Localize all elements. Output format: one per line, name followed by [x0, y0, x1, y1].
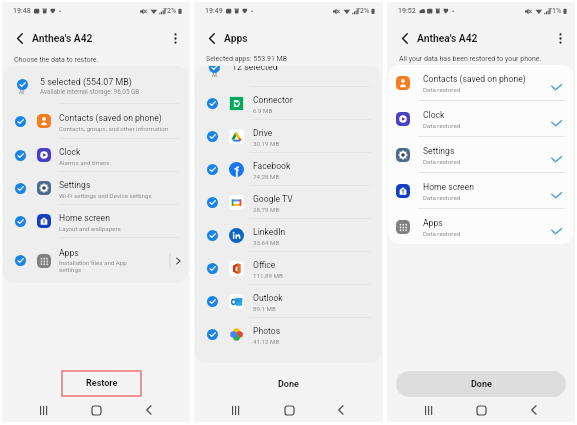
- staticText: Outlook: [253, 293, 283, 303]
- button[interactable]: Clock: [388, 101, 573, 136]
- button[interactable]: Apps: [388, 209, 573, 244]
- button[interactable]: Home screen: [3, 205, 188, 237]
- staticText: 19:52: [398, 7, 416, 15]
- button[interactable]: Contacts (saved on phone): [388, 65, 573, 100]
- staticText: Data restored: [423, 122, 461, 129]
- button[interactable]: Navigate up: [10, 28, 30, 48]
- staticText: 12 selected: [232, 66, 278, 72]
- staticText: Apps: [423, 218, 443, 228]
- button[interactable]: LinkedIn: [195, 219, 381, 251]
- button[interactable]: Home: [278, 399, 300, 421]
- staticText: 19:48: [13, 7, 31, 15]
- button[interactable]: Done: [194, 371, 383, 397]
- button[interactable]: Recents: [33, 399, 55, 421]
- staticText: Connector: [253, 95, 293, 105]
- staticText: Alarms and timers: [59, 159, 110, 166]
- staticText: 111.89 MB: [253, 272, 283, 279]
- button[interactable]: Settings: [388, 137, 573, 172]
- staticText: Facebook: [253, 161, 291, 171]
- button[interactable]: Navigate up: [395, 28, 415, 48]
- staticText: All: [19, 90, 25, 96]
- staticText: Data restored: [423, 230, 461, 237]
- staticText: 89.1 MB: [253, 305, 276, 312]
- button[interactable]: Restore: [62, 371, 141, 396]
- button[interactable]: Settings: [3, 172, 188, 204]
- staticText: 30.19 MB: [253, 140, 280, 147]
- button[interactable]: Photos: [195, 318, 381, 350]
- button[interactable]: Back: [138, 399, 160, 421]
- staticText: All: [212, 73, 218, 79]
- button[interactable]: Navigate up: [202, 28, 222, 48]
- button[interactable]: All: [3, 66, 188, 103]
- staticText: Drive: [253, 128, 273, 138]
- staticText: Installation files and App settings: [59, 259, 127, 273]
- staticText: Photos: [253, 326, 281, 336]
- staticText: Settings: [59, 180, 91, 190]
- staticText: Done: [278, 379, 299, 390]
- button[interactable]: Outlook: [195, 285, 381, 317]
- staticText: Home screen: [423, 182, 474, 192]
- button[interactable]: Recents: [225, 399, 247, 421]
- staticText: Available internal storage: 96.05 GB: [40, 88, 140, 95]
- staticText: 74.28 MB: [253, 173, 280, 180]
- staticText: Home screen: [59, 213, 110, 223]
- staticText: Anthea's A42: [32, 32, 93, 44]
- button[interactable]: More options: [166, 29, 184, 47]
- button[interactable]: More options: [551, 29, 569, 47]
- button[interactable]: Home: [85, 399, 107, 421]
- button[interactable]: Contacts (saved on phone): [3, 104, 188, 138]
- button[interactable]: Home: [470, 399, 492, 421]
- staticText: 71%: [548, 7, 562, 15]
- staticText: LinkedIn: [253, 227, 286, 237]
- staticText: Anthea's A42: [417, 32, 478, 44]
- staticText: Office: [253, 260, 276, 270]
- staticText: 72%: [163, 7, 177, 15]
- staticText: Clock: [423, 110, 445, 120]
- staticText: Choose the data to restore.: [14, 56, 99, 64]
- button[interactable]: Back: [523, 399, 545, 421]
- staticText: Settings: [423, 146, 455, 156]
- staticText: Contacts, groups, and other information: [59, 125, 169, 132]
- staticText: Contacts (saved on phone): [423, 74, 526, 84]
- button[interactable]: Clock: [3, 139, 188, 171]
- staticText: All your data has been restored to your …: [399, 55, 542, 63]
- button[interactable]: Recents: [418, 399, 440, 421]
- button[interactable]: Home screen: [388, 173, 573, 208]
- button[interactable]: Done: [396, 371, 566, 397]
- staticText: 41.12 MB: [253, 338, 280, 345]
- button[interactable]: Drive: [195, 120, 381, 152]
- staticText: Selected apps: 553.91 MB: [206, 55, 288, 63]
- staticText: Data restored: [423, 194, 461, 201]
- button[interactable]: Connector: [195, 87, 381, 119]
- staticText: 6.9 MB: [253, 107, 273, 114]
- staticText: Apps: [224, 32, 248, 44]
- staticText: Restore: [86, 378, 118, 389]
- staticText: Clock: [59, 147, 81, 157]
- staticText: Data restored: [423, 158, 461, 165]
- staticText: Done: [471, 379, 492, 390]
- staticText: Contacts (saved on phone): [59, 113, 162, 123]
- staticText: Google TV: [253, 194, 293, 204]
- button[interactable]: Apps: [3, 238, 188, 283]
- staticText: Wi-Fi settings and Device settings: [59, 192, 152, 199]
- staticText: 28.79 MB: [253, 206, 280, 213]
- staticText: 19:49: [205, 7, 223, 15]
- staticText: 72%: [356, 7, 370, 15]
- button[interactable]: Google TV: [195, 186, 381, 218]
- button[interactable]: Facebook: [195, 153, 381, 185]
- button[interactable]: Back: [330, 399, 352, 421]
- staticText: Layout and wallpapers: [59, 225, 121, 232]
- staticText: 33.64 MB: [253, 239, 280, 246]
- staticText: 5 selected (554.07 MB): [40, 77, 132, 87]
- staticText: Data restored: [423, 86, 461, 93]
- staticText: Apps: [59, 248, 79, 258]
- button[interactable]: Office: [195, 252, 381, 284]
